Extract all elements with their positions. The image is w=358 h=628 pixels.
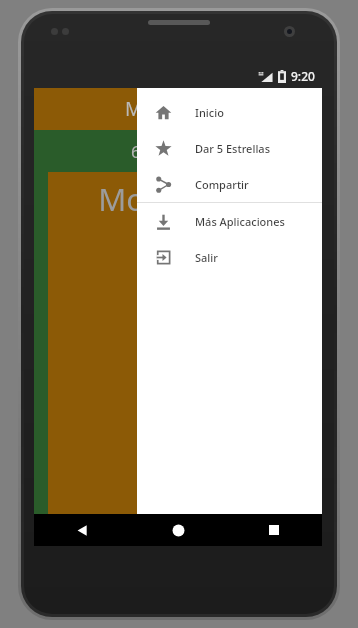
staticText: 6 Versiculos: [131, 140, 226, 163]
staticText: Movimiento: [125, 96, 232, 122]
button[interactable]: Más Aplicaciones: [137, 203, 322, 239]
staticText: Compartir: [195, 177, 249, 192]
button[interactable]: Salir: [137, 239, 322, 275]
staticText: Inicio: [195, 105, 224, 120]
button[interactable]: Dar 5 Estrellas: [137, 130, 322, 166]
staticText: Más Aplicaciones: [195, 214, 285, 229]
staticText: Movimiento: [98, 178, 272, 220]
staticText: 9:20: [291, 68, 315, 84]
staticText: Salir: [195, 250, 218, 265]
button[interactable]: Recent apps: [226, 514, 322, 546]
button[interactable]: Back: [34, 514, 130, 546]
staticText: Dar 5 Estrellas: [195, 141, 271, 156]
staticText: Nuevo: [138, 220, 233, 262]
button[interactable]: Home: [130, 514, 226, 546]
button[interactable]: Compartir: [137, 166, 322, 202]
button[interactable]: Inicio: [137, 94, 322, 130]
